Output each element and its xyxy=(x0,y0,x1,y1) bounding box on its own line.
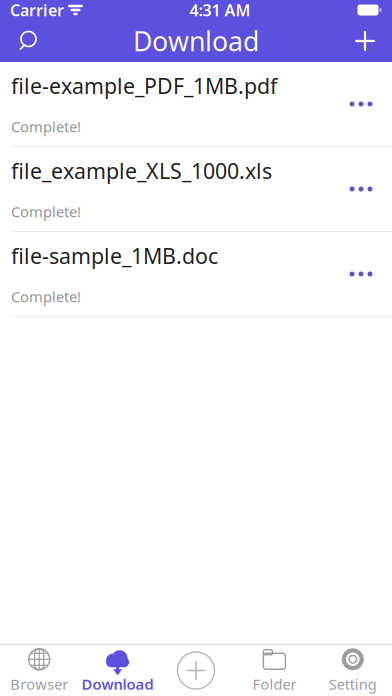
staticText: file-sample_1MB.doc xyxy=(11,242,218,270)
staticText: Folder xyxy=(252,674,296,694)
staticText: Download xyxy=(82,674,154,694)
staticText: Carrier xyxy=(10,0,64,21)
staticText: file-example_PDF_1MB.pdf xyxy=(11,72,277,100)
button[interactable]: Browser xyxy=(0,645,78,696)
staticText: Setting xyxy=(329,674,377,694)
button[interactable]: More options for file-sample_1MB.doc xyxy=(338,252,384,296)
button[interactable]: Add download xyxy=(338,20,392,62)
staticText: Browser xyxy=(10,674,68,694)
staticText: Complete! xyxy=(11,202,81,221)
button[interactable]: Setting xyxy=(314,645,392,696)
button[interactable]: Search xyxy=(0,20,54,62)
staticText: 4:31 AM xyxy=(189,0,250,21)
button[interactable]: New download xyxy=(157,645,235,696)
staticText: file_example_XLS_1000.xls xyxy=(11,157,272,185)
staticText: Download xyxy=(133,23,259,59)
button[interactable]: Download xyxy=(78,645,157,696)
staticText: Complete! xyxy=(11,287,81,306)
staticText: Complete! xyxy=(11,117,81,136)
button[interactable]: More options for file-example_PDF_1MB.pd… xyxy=(338,82,384,126)
button[interactable]: Folder xyxy=(235,645,314,696)
button[interactable]: More options for file_example_XLS_1000.x… xyxy=(338,167,384,211)
